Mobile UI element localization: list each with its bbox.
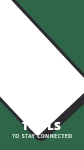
staticText: TO STAY CONNECTED bbox=[12, 133, 73, 140]
staticText: TOOLS bbox=[22, 118, 62, 133]
